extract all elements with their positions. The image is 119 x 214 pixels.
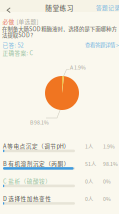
staticText: 随堂练习 — [45, 3, 74, 13]
staticText: 0人 — [85, 177, 93, 185]
staticText: A 等电点沉定（调节pH） — [3, 142, 70, 150]
staticText: 0% — [103, 177, 111, 185]
button[interactable]: D 选择性加热变性 — [3, 194, 119, 209]
staticText: 98.1% — [103, 160, 118, 167]
staticText: D 选择性加热变性 — [3, 194, 51, 203]
staticText: B 98.1% — [30, 118, 49, 126]
staticText: 必做 — [2, 17, 14, 26]
button[interactable]: 答题记录 — [96, 3, 119, 11]
staticText: 1.9% — [103, 142, 115, 150]
button[interactable]: 查看答题详情 > — [85, 41, 119, 49]
staticText: 答题记录 — [96, 3, 119, 11]
staticText: 51人 — [85, 160, 96, 167]
staticText: 在制备大肠SOD粗酶液时，选择的是下面哪种方 — [2, 25, 116, 33]
staticText: 法提取SOD? — [2, 31, 33, 39]
staticText: 已答: 52 — [2, 41, 23, 49]
button[interactable]: A 等电点沉定（调节pH） — [3, 142, 119, 157]
staticText: [单选题] — [16, 17, 38, 26]
staticText: 1人 — [85, 142, 93, 150]
button[interactable]: C 盐析（硫酸铵） — [3, 177, 119, 192]
button[interactable]: Back — [3, 4, 15, 16]
staticText: C 盐析（硫酸铵） — [3, 177, 51, 185]
staticText: 0人 — [85, 195, 93, 202]
staticText: 0% — [103, 195, 111, 202]
staticText: A 1.9% — [70, 63, 86, 71]
staticText: 正确答案: C — [2, 49, 33, 57]
button[interactable]: B 有机溶剂沉定（丙酮） — [3, 159, 119, 174]
staticText: B 有机溶剂沉定（丙酮） — [3, 159, 70, 168]
staticText: 查看答题详情 > — [85, 41, 119, 49]
